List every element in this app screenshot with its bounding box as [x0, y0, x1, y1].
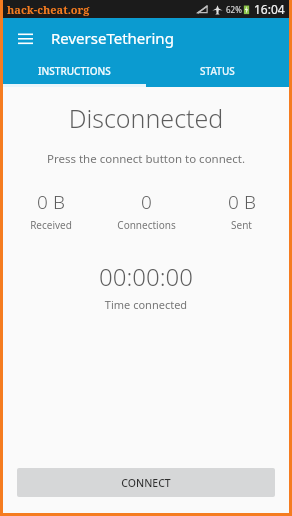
staticText: 0 B: [228, 189, 256, 215]
staticText: INSTRUCTIONS: [38, 64, 111, 78]
button[interactable]: Open navigation drawer: [13, 26, 37, 50]
staticText: CONNECT: [121, 476, 171, 490]
staticText: Time connected: [3, 297, 289, 312]
staticText: STATUS: [200, 64, 235, 78]
button[interactable]: STATUS: [146, 58, 289, 84]
staticText: 62%: [226, 4, 242, 15]
button[interactable]: CONNECT: [17, 468, 275, 497]
staticText: 16:04: [254, 1, 285, 17]
button[interactable]: INSTRUCTIONS: [3, 58, 146, 84]
staticText: Press the connect button to connect.: [3, 151, 289, 167]
staticText: 0: [141, 189, 152, 215]
staticText: Disconnected: [3, 101, 289, 135]
staticText: hack-cheat.org: [7, 2, 90, 17]
staticText: Connections: [117, 218, 176, 232]
staticText: 0 B: [37, 189, 65, 215]
staticText: ReverseTethering: [51, 28, 174, 48]
staticText: Received: [30, 218, 72, 232]
staticText: Sent: [231, 218, 252, 232]
staticText: 00:00:00: [3, 260, 289, 293]
